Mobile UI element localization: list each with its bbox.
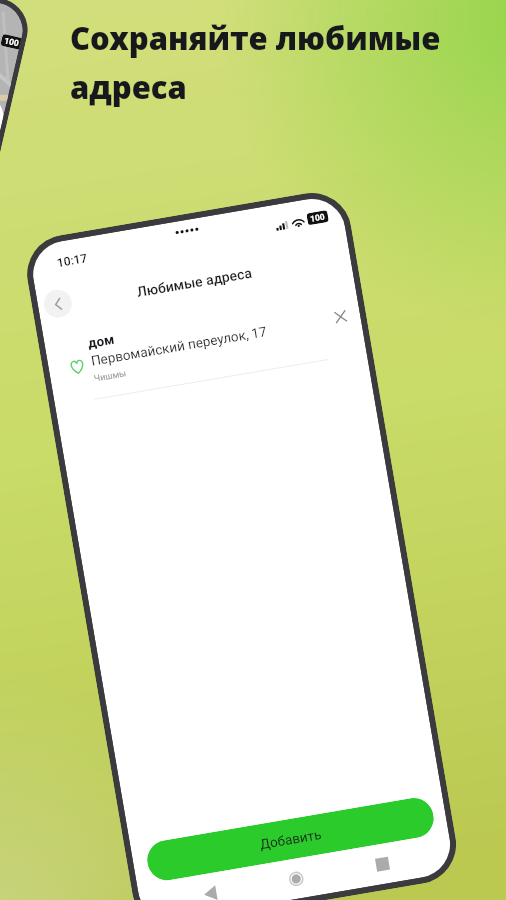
staticText: 10:17 bbox=[56, 251, 89, 270]
staticText: Чишмы bbox=[93, 368, 128, 385]
staticText: Первомайский переулок, 17 bbox=[90, 323, 268, 369]
staticText: Сохраняйте любимые bbox=[70, 17, 441, 59]
staticText: 100 bbox=[309, 211, 326, 224]
button[interactable]: Remove address bbox=[326, 302, 354, 330]
staticText: дом bbox=[87, 331, 116, 351]
button[interactable]: Back bbox=[42, 287, 74, 320]
staticText: Любимые адреса bbox=[37, 248, 351, 317]
staticText: Добавить bbox=[259, 826, 322, 852]
staticText: 100 bbox=[3, 35, 20, 48]
button[interactable]: дом bbox=[43, 284, 366, 405]
button[interactable]: Добавить bbox=[144, 795, 437, 883]
staticText: адреса bbox=[70, 66, 187, 108]
